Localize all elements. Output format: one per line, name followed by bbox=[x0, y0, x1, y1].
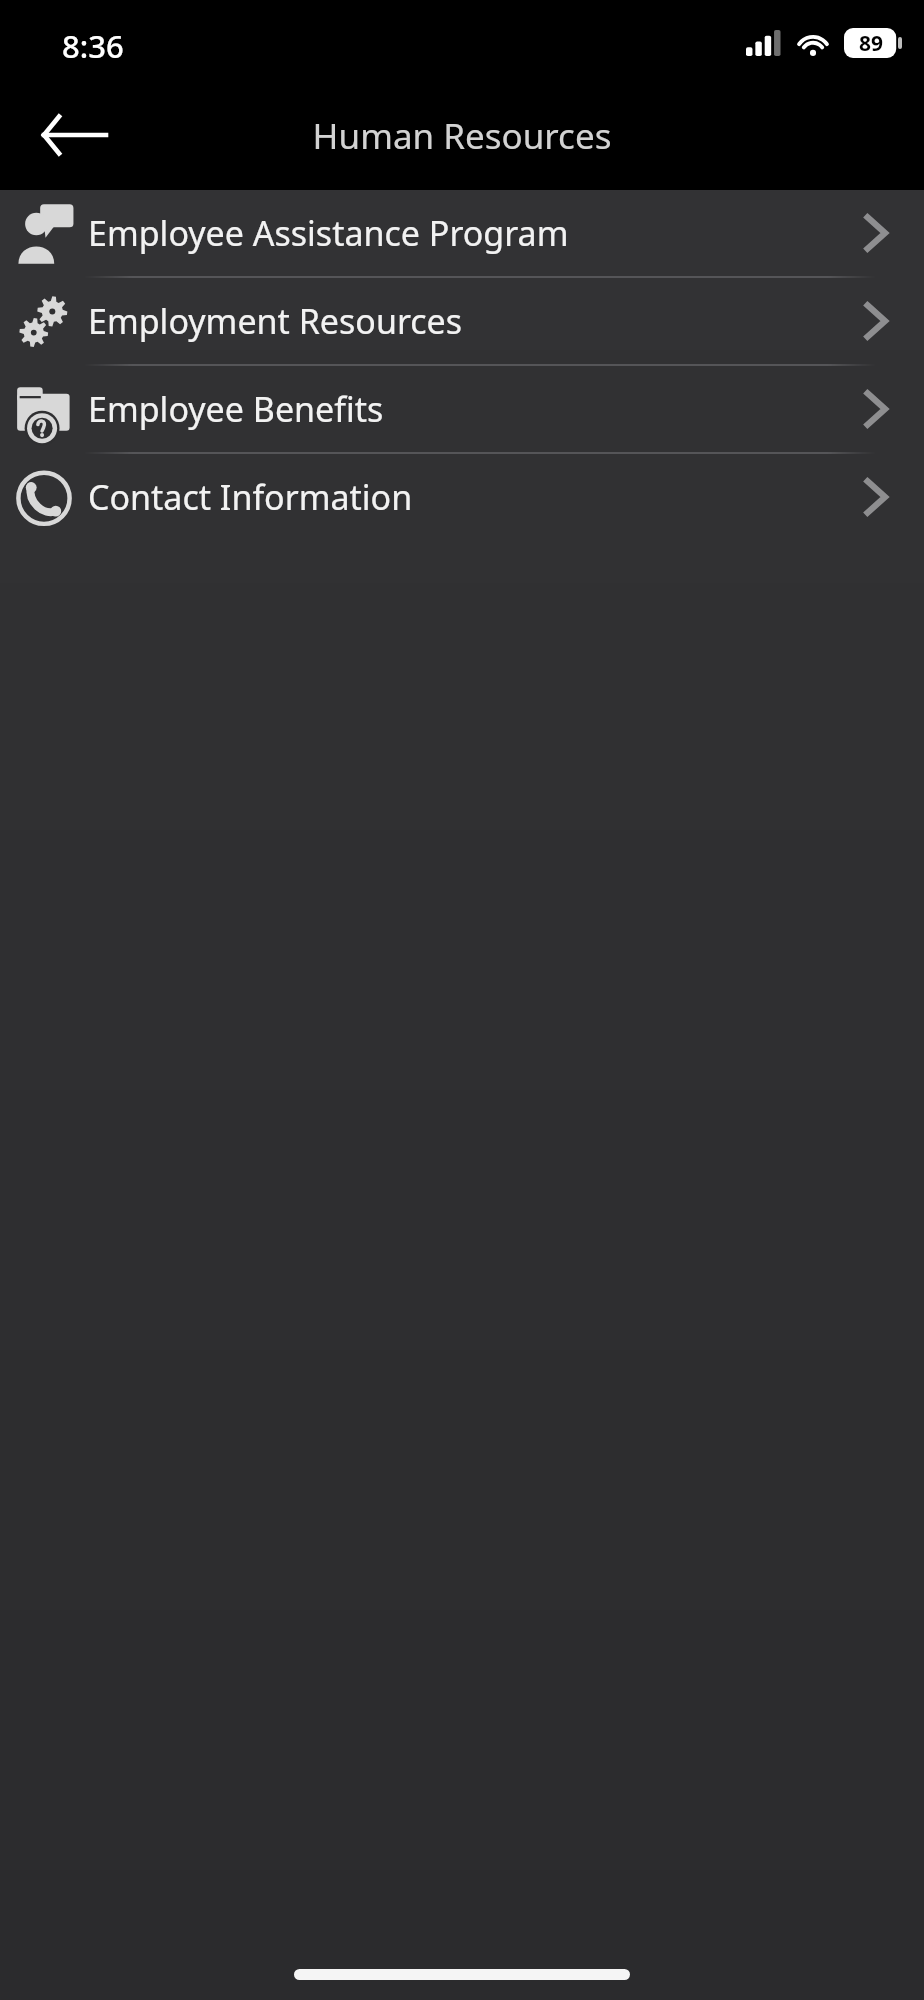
button[interactable]: Employee Assistance Program bbox=[0, 190, 924, 276]
staticText: 8:36 bbox=[62, 25, 124, 67]
button[interactable]: Employment Resources bbox=[0, 278, 924, 364]
staticText: Employment Resources bbox=[88, 298, 828, 344]
button[interactable]: Employee Benefits bbox=[0, 366, 924, 452]
staticText: 89 bbox=[859, 29, 884, 58]
staticText: Human Resources bbox=[0, 112, 924, 160]
staticText: Contact Information bbox=[88, 474, 828, 520]
staticText: Employee Assistance Program bbox=[88, 210, 828, 256]
button[interactable]: Back bbox=[30, 95, 120, 175]
staticText: Employee Benefits bbox=[88, 386, 828, 432]
button[interactable]: Contact Information bbox=[0, 454, 924, 540]
